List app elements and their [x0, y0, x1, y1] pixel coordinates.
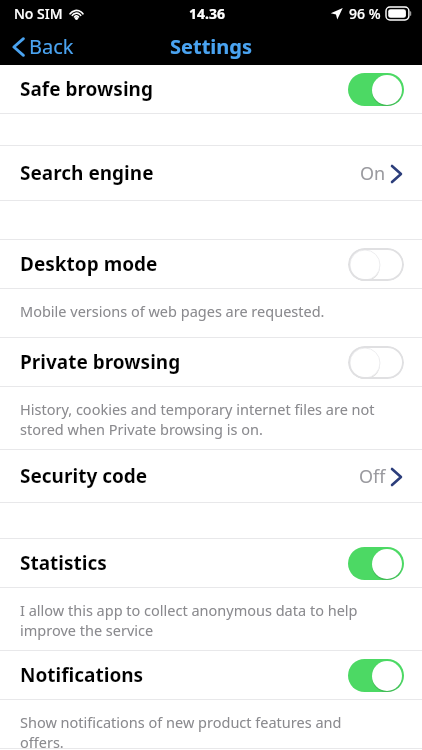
- staticText: Notifications: [20, 662, 144, 688]
- staticText: Show notifications of new product featur…: [20, 712, 388, 748]
- staticText: 14.36: [189, 4, 225, 23]
- staticText: No SIM: [14, 4, 63, 23]
- staticText: On: [360, 161, 386, 186]
- staticText: 96 %: [349, 4, 381, 23]
- button[interactable]: Private browsing: [0, 338, 422, 386]
- button[interactable]: Desktop mode: [0, 240, 422, 288]
- staticText: Statistics: [20, 550, 107, 576]
- button[interactable]: Security code: [0, 450, 422, 502]
- staticText: Desktop mode: [20, 251, 158, 277]
- button[interactable]: Notifications: [0, 651, 422, 699]
- staticText: Private browsing: [20, 349, 181, 375]
- staticText: Back: [29, 33, 74, 60]
- button[interactable]: Safe browsing: [0, 65, 422, 113]
- staticText: Settings: [170, 33, 252, 60]
- button[interactable]: Statistics: [0, 539, 422, 587]
- button[interactable]: Search engine: [0, 146, 422, 200]
- staticText: Mobile versions of web pages are request…: [20, 301, 325, 321]
- staticText: I allow this app to collect anonymous da…: [20, 600, 388, 641]
- button[interactable]: Back: [0, 29, 86, 64]
- staticText: History, cookies and temporary internet …: [20, 399, 388, 440]
- staticText: Security code: [20, 463, 148, 489]
- staticText: Off: [359, 464, 386, 489]
- staticText: Search engine: [20, 160, 154, 186]
- staticText: Safe browsing: [20, 76, 153, 102]
